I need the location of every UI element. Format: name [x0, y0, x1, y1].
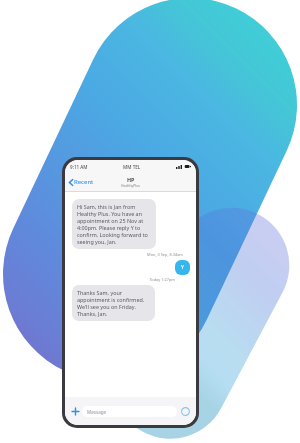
staticText: Today 1:27pm [65, 277, 175, 282]
button[interactable]: Hi Sam, this is Jan from Healthy Plus. Y… [72, 199, 156, 249]
staticText: HP [127, 176, 135, 183]
staticText: Recent [74, 178, 94, 186]
staticText: Message [87, 409, 107, 415]
staticText: Y [181, 264, 184, 271]
staticText: 9:11 AM [70, 164, 88, 170]
staticText: Hi Sam, this is Jan from Healthy Plus. Y… [77, 203, 151, 245]
staticText: Thanks Sam, your appointment is confirme… [77, 289, 150, 317]
button[interactable]: Recent [69, 173, 94, 191]
button[interactable]: Add attachment [70, 406, 81, 417]
button[interactable]: Emoji [180, 406, 191, 417]
button[interactable]: Message [82, 406, 177, 417]
staticText: Mon, 3 Sep, 8.34am [65, 252, 183, 257]
staticText: MM TEL [123, 164, 141, 170]
button[interactable]: Thanks Sam, your appointment is confirme… [72, 285, 155, 321]
button[interactable]: Y [175, 260, 190, 275]
staticText: HealthyPlus [121, 183, 140, 188]
